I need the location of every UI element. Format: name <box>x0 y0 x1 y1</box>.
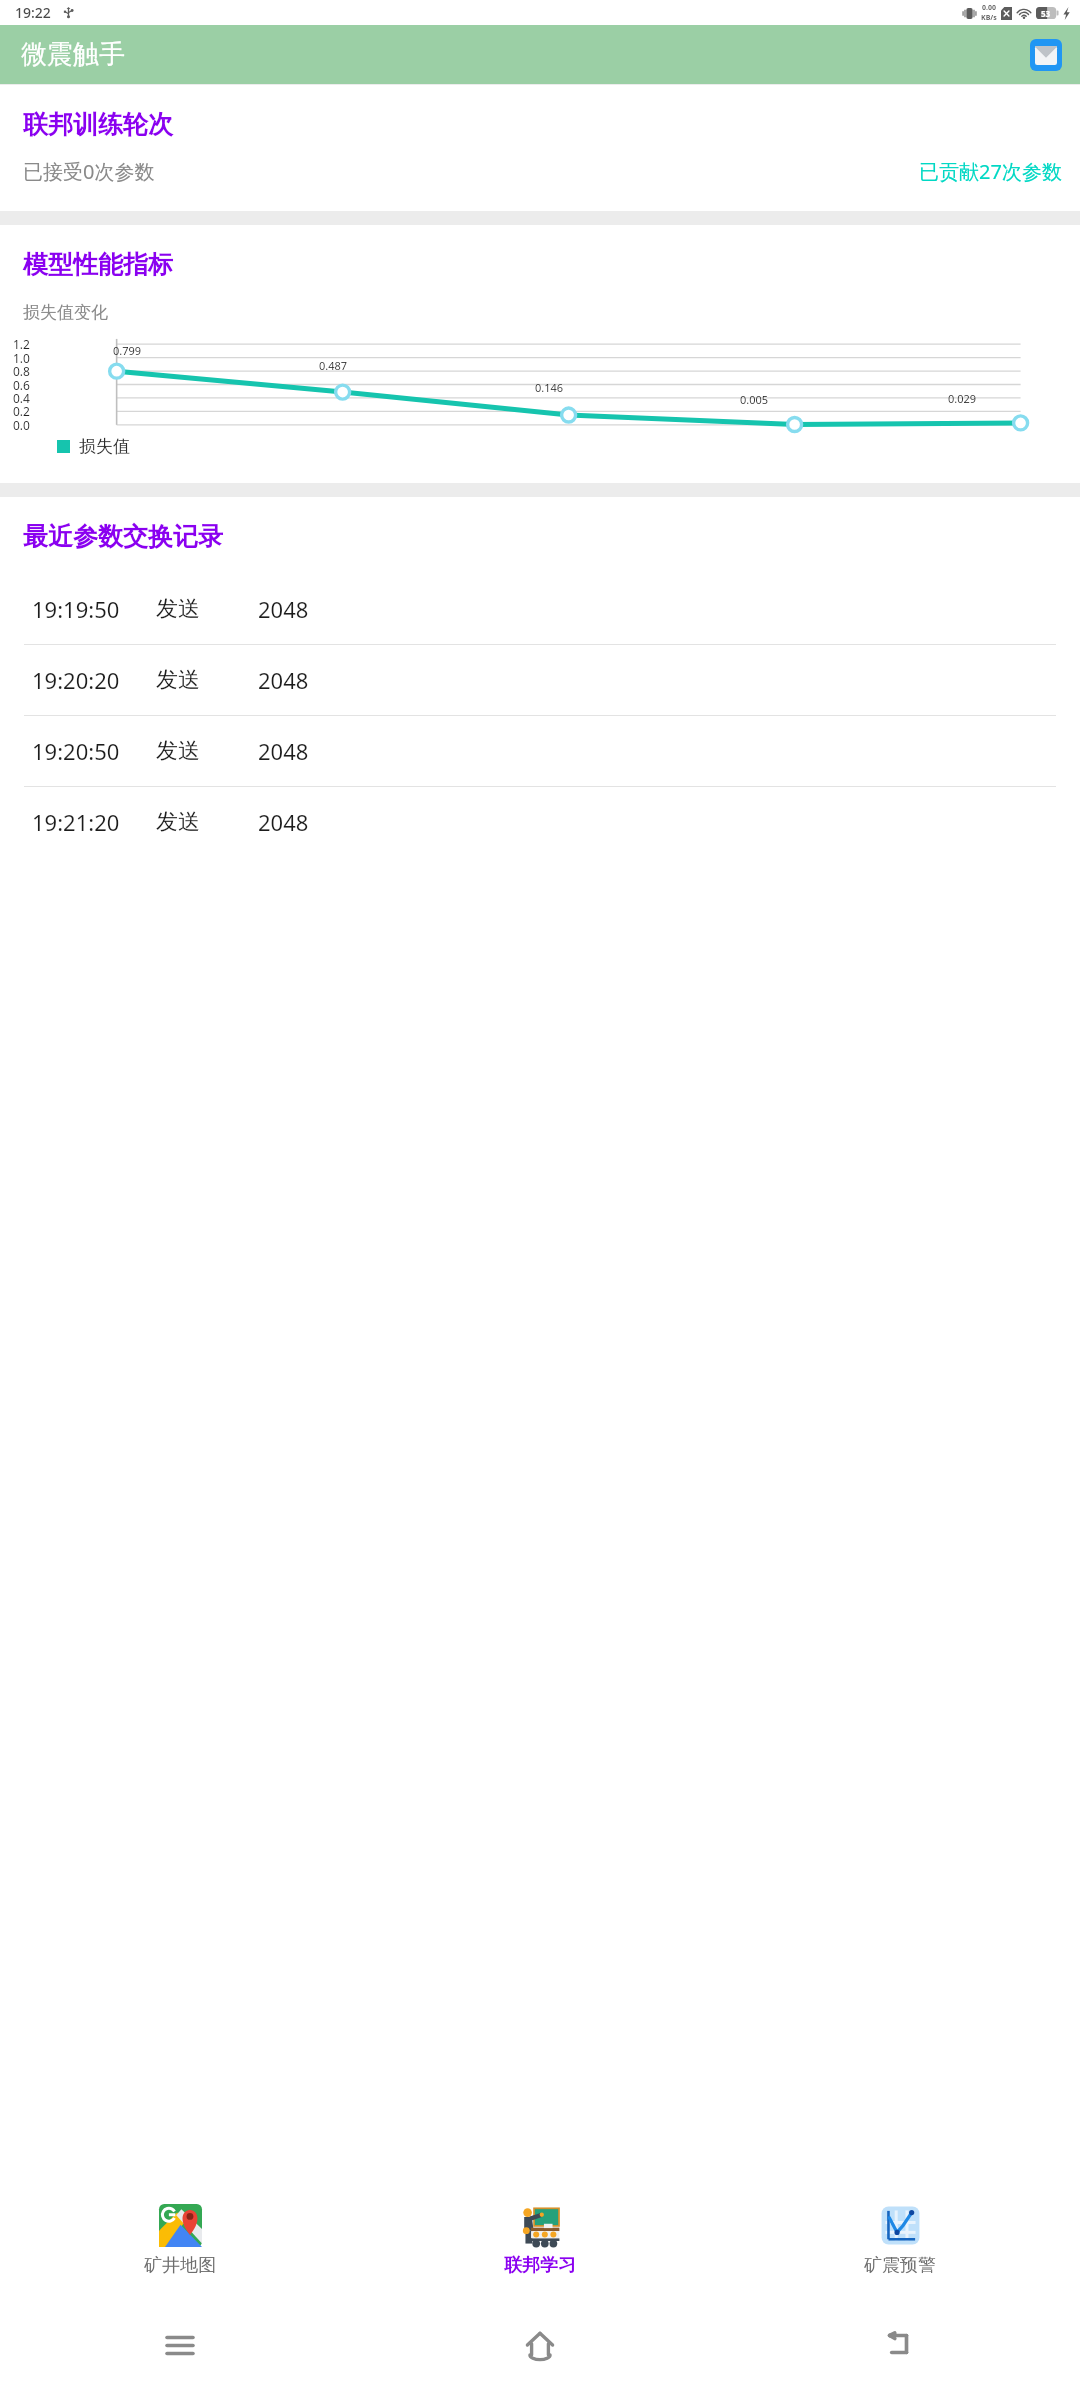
staticText: 0.146 <box>535 380 564 395</box>
staticText: 0.4 <box>13 390 30 406</box>
staticText: 0.029 <box>948 391 977 406</box>
button[interactable]: 19:19:50 <box>0 574 1080 644</box>
staticText: 矿震预警 <box>864 2254 936 2277</box>
staticText: 1.2 <box>13 336 30 352</box>
staticText: 19:19:50 <box>32 594 120 624</box>
button[interactable]: Home <box>360 2290 720 2400</box>
button[interactable]: 19:20:20 <box>0 645 1080 715</box>
staticText: 1.0 <box>13 350 30 366</box>
staticText: 0.487 <box>319 358 348 373</box>
staticText: 已接受0次参数 <box>23 158 155 185</box>
staticText: 微震触手 <box>21 38 125 71</box>
staticText: 0.6 <box>13 377 30 393</box>
staticText: 发送 <box>156 666 200 694</box>
button[interactable]: 联邦学习 <box>360 2191 720 2290</box>
staticText: 最近参数交换记录 <box>23 521 223 552</box>
staticText: KB/s <box>981 13 997 23</box>
button[interactable]: 19:20:50 <box>0 716 1080 786</box>
staticText: 联邦训练轮次 <box>23 109 173 140</box>
button[interactable]: 矿井地图 <box>0 2191 360 2290</box>
staticText: 0.00 <box>982 3 996 13</box>
staticText: 2048 <box>258 736 309 766</box>
staticText: 0.8 <box>13 363 30 379</box>
staticText: 0.0 <box>13 417 30 433</box>
staticText: 损失值 <box>79 436 130 457</box>
staticText: 2048 <box>258 807 309 837</box>
staticText: 模型性能指标 <box>23 249 173 280</box>
staticText: 发送 <box>156 737 200 765</box>
staticText: 0.799 <box>113 343 142 358</box>
staticText: 发送 <box>156 595 200 623</box>
staticText: 0.2 <box>13 403 30 419</box>
staticText: 19:20:50 <box>32 736 120 766</box>
button[interactable]: 矿震预警 <box>720 2191 1080 2290</box>
staticText: 联邦学习 <box>504 2254 576 2277</box>
button[interactable]: Mail <box>1030 39 1062 71</box>
staticText: 2048 <box>258 594 309 624</box>
staticText: 19:22 <box>15 3 51 22</box>
staticText: 发送 <box>156 808 200 836</box>
staticText: 53 <box>1041 8 1051 19</box>
button[interactable]: Recents <box>0 2290 360 2400</box>
staticText: 损失值变化 <box>23 302 108 323</box>
staticText: 0.005 <box>740 392 769 407</box>
staticText: 19:21:20 <box>32 807 120 837</box>
staticText: 19:20:20 <box>32 665 120 695</box>
staticText: 已贡献27次参数 <box>919 158 1062 185</box>
button[interactable]: Back <box>720 2290 1080 2400</box>
staticText: 矿井地图 <box>144 2254 216 2277</box>
staticText: 2048 <box>258 665 309 695</box>
button[interactable]: 19:21:20 <box>0 787 1080 857</box>
